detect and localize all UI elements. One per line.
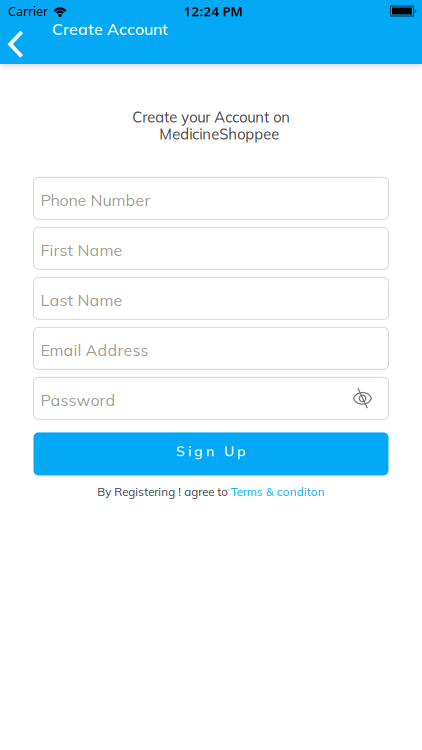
staticText: By Registering ! agree to [97, 484, 228, 499]
button[interactable]: Terms & conditon [231, 484, 325, 499]
staticText: First Name [40, 240, 122, 260]
button[interactable]: Show password [352, 389, 388, 407]
staticText: 12:24 PM [183, 2, 242, 20]
staticText: Password [40, 390, 115, 410]
textField[interactable]: Phone Number [40, 190, 211, 210]
staticText: Email Address [40, 340, 148, 360]
staticText: Carrier [8, 2, 48, 20]
staticText: Last Name [40, 290, 122, 310]
staticText: Create Account [52, 19, 168, 39]
staticText: Phone Number [40, 190, 150, 210]
textField[interactable]: First Name [40, 240, 211, 260]
textField[interactable]: Password [40, 390, 193, 410]
staticText: Terms & conditon [231, 484, 325, 499]
staticText: Create your Account on MedicineShoppee [132, 108, 290, 142]
button[interactable]: Back [0, 18, 36, 60]
button[interactable]: S i g n U p [33, 432, 388, 475]
staticText: S i g n U p [176, 442, 246, 460]
textField[interactable]: Last Name [40, 290, 211, 310]
textField[interactable]: Email Address [40, 340, 211, 360]
